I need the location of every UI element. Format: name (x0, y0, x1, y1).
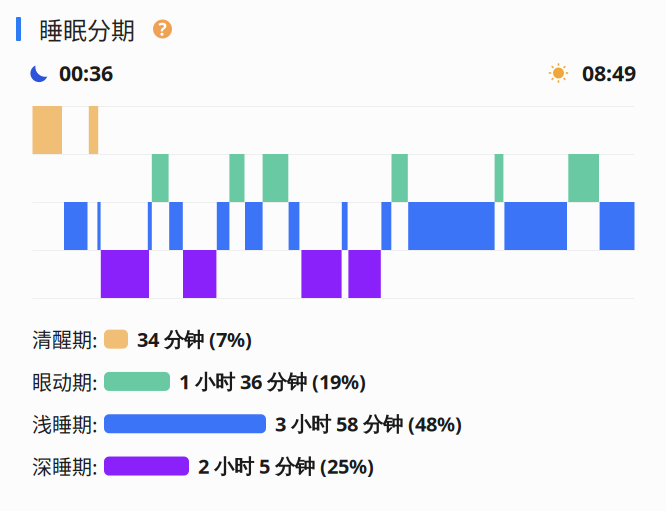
staticText: 00:36 (59, 59, 113, 87)
staticText: 1 小时 36 分钟 (19%) (179, 368, 366, 395)
staticText: 3 小时 58 分钟 (48%) (275, 410, 462, 437)
staticText: 眼动期: (32, 367, 98, 396)
staticText: 2 小时 5 分钟 (25%) (198, 452, 374, 480)
staticText: 深睡期: (32, 452, 98, 481)
staticText: 34 分钟 (7%) (137, 325, 252, 353)
staticText: ? (158, 17, 166, 40)
staticText: 清醒期: (32, 325, 98, 354)
button[interactable]: Help (153, 19, 172, 38)
staticText: 睡眠分期 (39, 12, 135, 46)
staticText: 浅睡期: (32, 409, 98, 438)
staticText: 08:49 (582, 59, 636, 87)
